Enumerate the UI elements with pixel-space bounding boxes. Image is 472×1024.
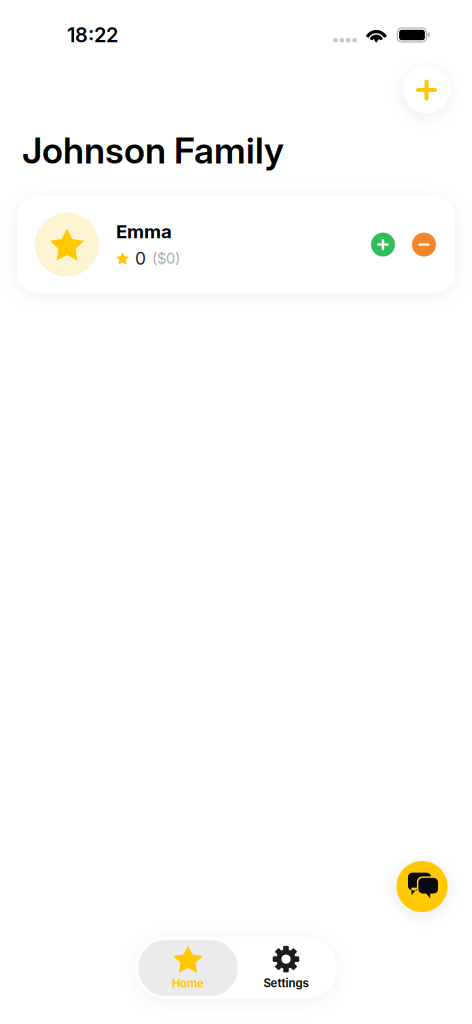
staticText: Settings bbox=[263, 976, 308, 990]
button[interactable]: Home bbox=[138, 940, 238, 996]
button[interactable]: Settings bbox=[238, 940, 334, 996]
staticText: 0 bbox=[135, 248, 146, 269]
button[interactable]: Add star bbox=[371, 233, 395, 257]
staticText: 18:22 bbox=[67, 23, 118, 47]
staticText: Johnson Family bbox=[22, 128, 284, 172]
staticText: Home bbox=[172, 977, 204, 990]
staticText: ($0) bbox=[152, 249, 180, 267]
button[interactable]: Remove star bbox=[412, 233, 436, 257]
staticText: Emma bbox=[116, 220, 172, 243]
button[interactable]: Add bbox=[403, 66, 450, 113]
button[interactable]: Messages bbox=[396, 861, 447, 912]
